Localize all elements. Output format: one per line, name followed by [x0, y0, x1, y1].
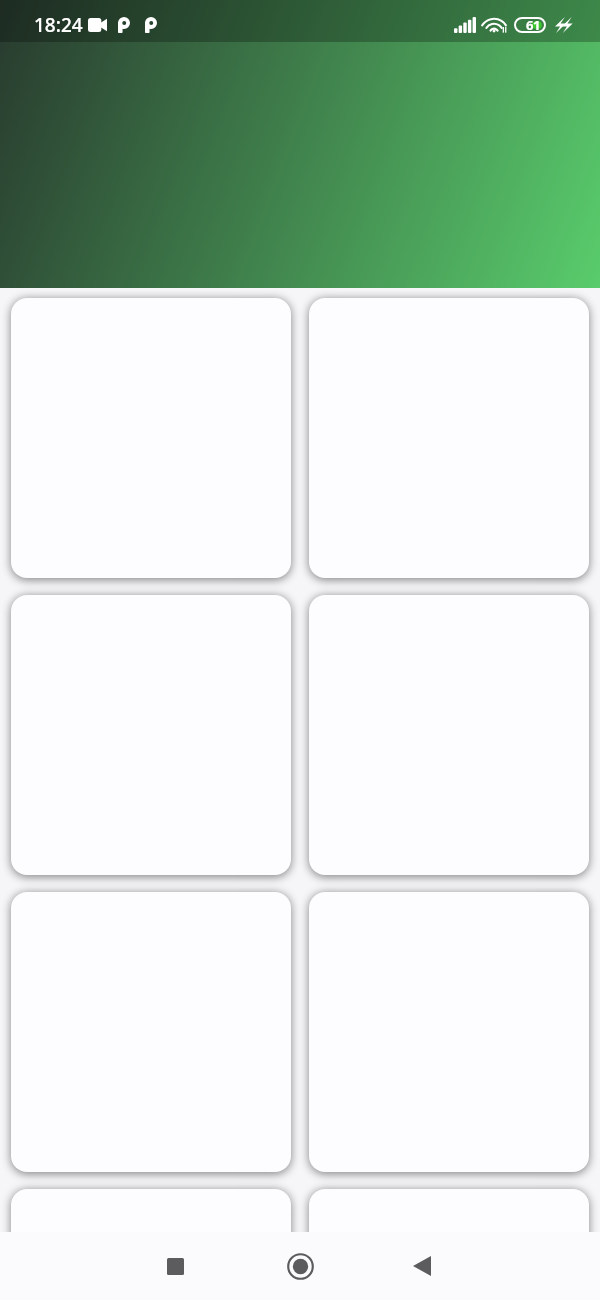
button[interactable] [11, 1189, 291, 1300]
button[interactable]: Back [398, 1242, 446, 1290]
button[interactable]: Recents [151, 1242, 199, 1290]
button[interactable]: Home [276, 1242, 324, 1290]
button[interactable] [309, 1189, 589, 1300]
staticText: 61 [526, 16, 541, 34]
staticText: 18:24 [34, 12, 83, 38]
